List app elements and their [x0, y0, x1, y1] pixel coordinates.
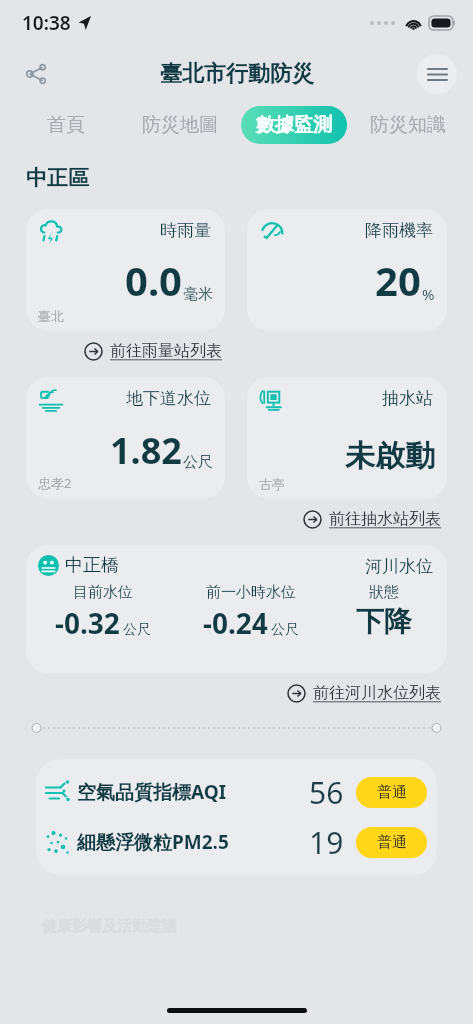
button[interactable]: Menu: [417, 54, 457, 94]
button[interactable]: 首頁: [41, 107, 91, 143]
staticText: 前往河川水位列表: [313, 683, 441, 703]
staticText: 未啟動: [345, 437, 435, 475]
staticText: 中正區: [26, 165, 89, 191]
staticText: 古亭: [259, 476, 285, 492]
staticText: 中正橋: [65, 554, 119, 577]
staticText: 健康影響及活動建議: [42, 917, 177, 936]
staticText: 抽水站: [382, 388, 433, 409]
staticText: 20: [375, 253, 421, 307]
button[interactable]: 數據監測: [241, 106, 347, 144]
staticText: 臺北市行動防災: [160, 60, 314, 88]
staticText: 前往雨量站列表: [110, 341, 222, 361]
button[interactable]: 地下道水位: [26, 377, 225, 499]
button[interactable]: 中正橋: [26, 545, 447, 673]
button[interactable]: 時雨量: [26, 209, 225, 331]
staticText: 前往抽水站列表: [329, 509, 441, 529]
staticText: %: [422, 284, 435, 304]
staticText: 空氣品質指標AQI: [77, 779, 227, 805]
button[interactable]: 前往雨量站列表: [80, 337, 226, 365]
staticText: 時雨量: [160, 220, 211, 241]
staticText: 降雨機率: [365, 220, 433, 241]
button[interactable]: 防災地圖: [136, 107, 224, 143]
staticText: 19: [309, 822, 344, 863]
staticText: 數據監測: [256, 113, 332, 137]
staticText: 普通: [377, 833, 407, 852]
staticText: 公尺: [183, 453, 213, 472]
button[interactable]: 細懸浮微粒PM2.5: [36, 817, 437, 867]
staticText: 首頁: [47, 113, 85, 137]
staticText: 防災地圖: [142, 113, 218, 137]
staticText: 臺北: [38, 308, 64, 324]
staticText: 56: [309, 772, 344, 813]
staticText: 河川水位: [365, 556, 433, 577]
staticText: 細懸浮微粒PM2.5: [77, 829, 229, 855]
staticText: 目前水位: [73, 583, 133, 602]
staticText: 普通: [377, 783, 407, 802]
button[interactable]: 抽水站: [247, 377, 447, 499]
button[interactable]: 前往抽水站列表: [299, 505, 445, 533]
staticText: 地下道水位: [126, 388, 211, 409]
button[interactable]: 空氣品質指標AQI: [36, 767, 437, 817]
staticText: 狀態: [369, 583, 399, 602]
staticText: 10:38: [22, 10, 71, 36]
staticText: 公尺: [271, 621, 299, 639]
staticText: -0.24: [203, 604, 268, 642]
staticText: 前一小時水位: [206, 583, 296, 602]
staticText: 0.0: [125, 253, 182, 307]
button[interactable]: 防災知識: [364, 107, 452, 143]
button[interactable]: 前往河川水位列表: [283, 679, 445, 707]
staticText: 毫米: [183, 285, 213, 304]
staticText: 忠孝2: [38, 474, 72, 492]
staticText: 1.82: [110, 426, 182, 475]
staticText: 公尺: [123, 621, 151, 639]
staticText: -0.32: [55, 604, 120, 642]
button[interactable]: Share: [14, 52, 58, 96]
button[interactable]: 降雨機率: [247, 209, 447, 331]
staticText: 下降: [356, 604, 412, 639]
staticText: 防災知識: [370, 113, 446, 137]
